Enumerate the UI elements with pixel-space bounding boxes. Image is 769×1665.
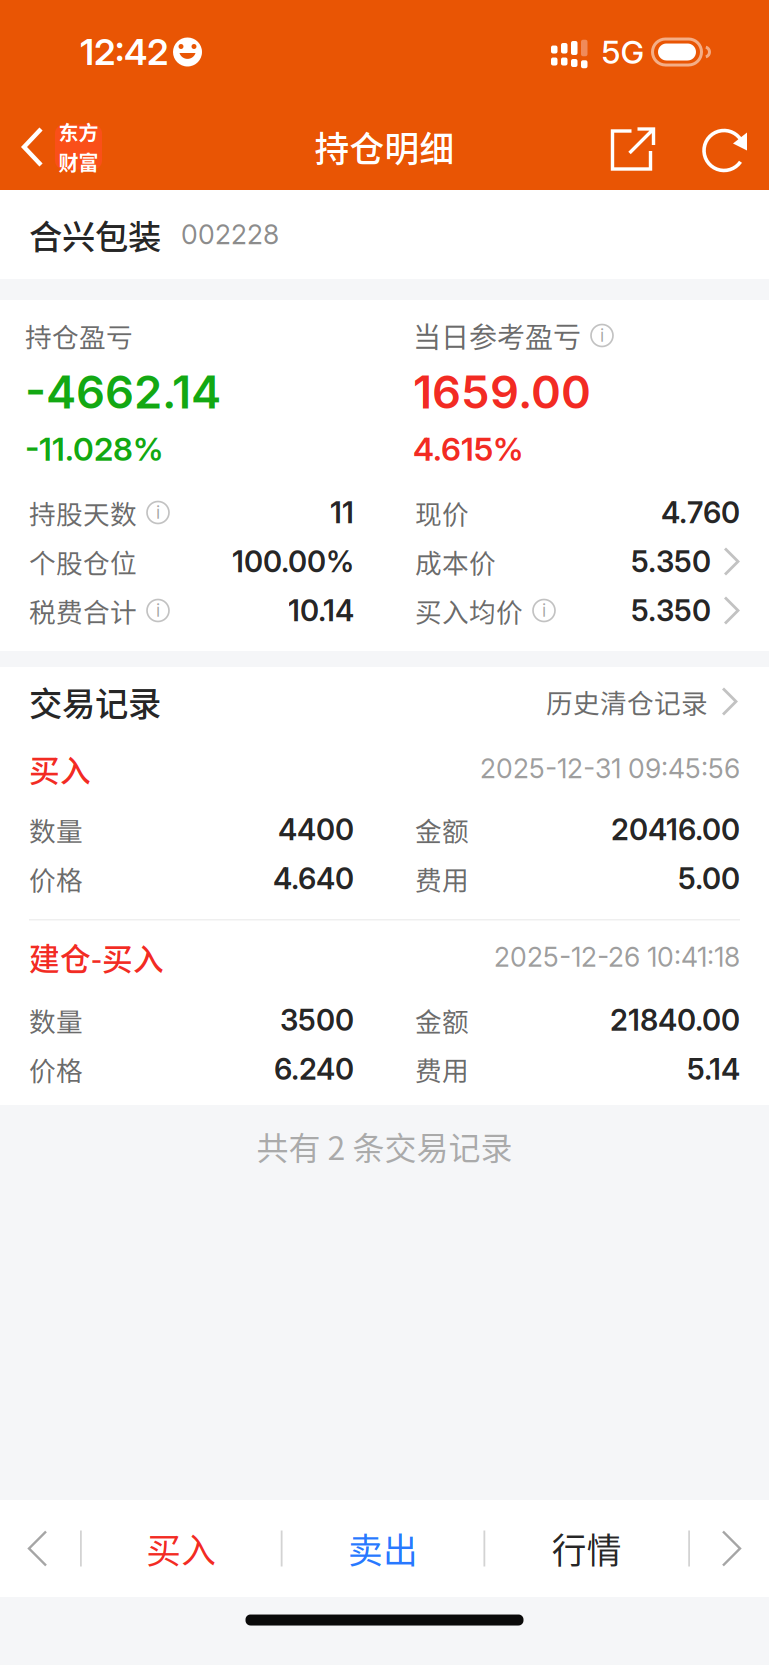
staticText: 4.760 (661, 495, 740, 530)
staticText: 行情 (552, 1523, 622, 1574)
staticText: 费用 (415, 859, 469, 898)
staticText: 买入 (29, 746, 91, 791)
staticText: 持股天数 (29, 493, 137, 532)
staticText: 20416.00 (611, 812, 740, 847)
staticText: 21840.00 (610, 1002, 740, 1038)
staticText: 4400 (278, 812, 354, 847)
staticText: 金额 (415, 1001, 469, 1039)
staticText: 5.00 (678, 861, 740, 896)
staticText: 费用 (415, 1050, 469, 1088)
staticText: 5.14 (687, 1051, 740, 1087)
staticText: 2025-12-26 10:41:18 (494, 941, 740, 973)
staticText: -4662.14 (25, 365, 221, 419)
button[interactable]: Previous (0, 1500, 80, 1597)
staticText: 财富 (58, 147, 98, 176)
staticText: 价格 (29, 859, 83, 898)
button[interactable]: 卖出 (316, 1500, 450, 1597)
staticText: 持仓盈亏 (25, 316, 133, 355)
staticText: i (156, 502, 160, 523)
staticText: 成本价 (415, 542, 496, 581)
button[interactable]: 行情 (519, 1500, 655, 1597)
button[interactable]: 历史清仓记录 (546, 685, 740, 718)
button[interactable]: 买入 (115, 1500, 247, 1597)
staticText: 1659.00 (413, 365, 591, 419)
staticText: 持仓明细 (314, 122, 454, 172)
staticText: 100.00% (232, 544, 354, 579)
button[interactable]: Back (0, 104, 170, 190)
staticText: i (156, 600, 160, 621)
staticText: 个股仓位 (29, 542, 137, 581)
staticText: 5G (601, 33, 644, 71)
staticText: 数量 (29, 1001, 83, 1039)
staticText: 002228 (181, 218, 279, 251)
staticText: 交易记录 (29, 677, 161, 726)
staticText: 价格 (29, 1050, 83, 1088)
staticText: 10.14 (288, 593, 354, 628)
staticText: 买入 (146, 1523, 216, 1574)
staticText: 东方 (58, 117, 98, 146)
button[interactable]: Refresh (690, 115, 762, 187)
staticText: 4.615% (413, 430, 523, 468)
staticText: i (542, 600, 546, 621)
staticText: 买入均价 (415, 591, 523, 630)
staticText: 11 (330, 495, 354, 530)
staticText: 3500 (280, 1002, 354, 1038)
staticText: 6.240 (274, 1051, 354, 1087)
staticText: 合兴包装 (29, 210, 161, 259)
staticText: 5.350 (631, 593, 711, 628)
staticText: 5.350 (631, 544, 711, 579)
staticText: i (600, 325, 604, 346)
staticText: 建仓-买入 (29, 935, 164, 979)
staticText: 共有 2 条交易记录 (256, 1123, 512, 1169)
staticText: 卖出 (348, 1523, 418, 1574)
staticText: 税费合计 (29, 591, 137, 630)
staticText: 数量 (29, 810, 83, 849)
staticText: 12:42 (80, 30, 168, 74)
staticText: 4.640 (273, 861, 354, 896)
staticText: 当日参考盈亏 (413, 315, 581, 356)
staticText: 历史清仓记录 (546, 682, 708, 721)
staticText: 2025-12-31 09:45:56 (480, 752, 740, 785)
staticText: -11.028% (25, 430, 163, 468)
staticText: 现价 (415, 493, 469, 532)
button[interactable]: Share (597, 114, 669, 186)
staticText: 金额 (415, 810, 469, 849)
button[interactable]: Next (690, 1500, 769, 1597)
